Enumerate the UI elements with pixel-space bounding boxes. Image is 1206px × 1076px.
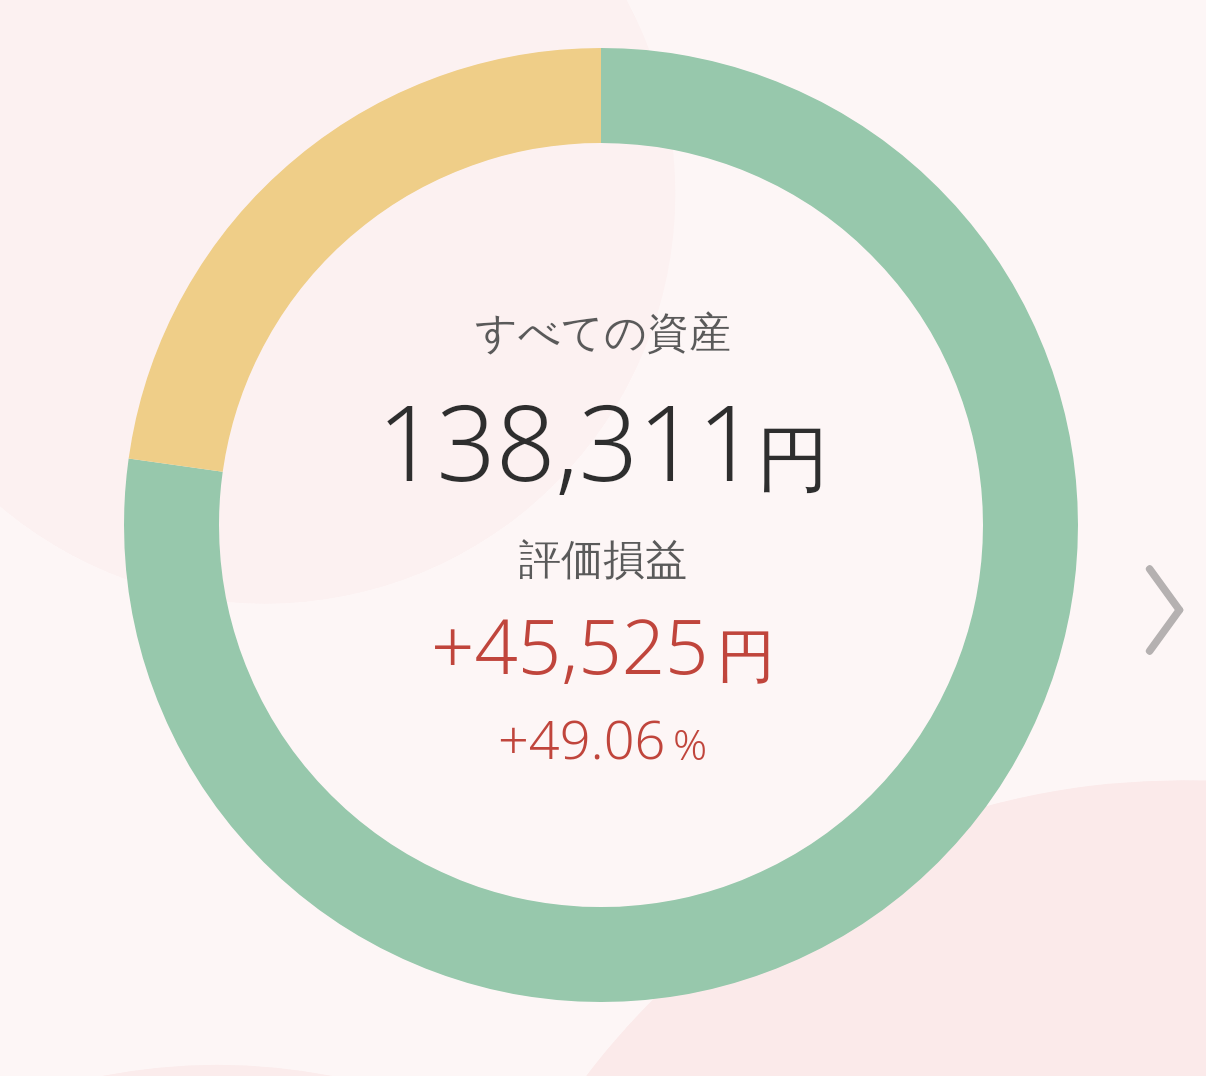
button[interactable]: Asset summary chart: [273, 207, 933, 867]
staticText: 円: [757, 415, 829, 506]
staticText: +45,525: [431, 593, 709, 697]
staticText: すべての資産: [475, 307, 731, 360]
staticText: 138,311: [377, 370, 757, 512]
button[interactable]: Next: [1130, 555, 1200, 665]
staticText: 円: [717, 620, 775, 693]
staticText: %: [673, 715, 708, 772]
staticText: +49.06: [498, 701, 666, 775]
staticText: 評価損益: [519, 534, 687, 587]
